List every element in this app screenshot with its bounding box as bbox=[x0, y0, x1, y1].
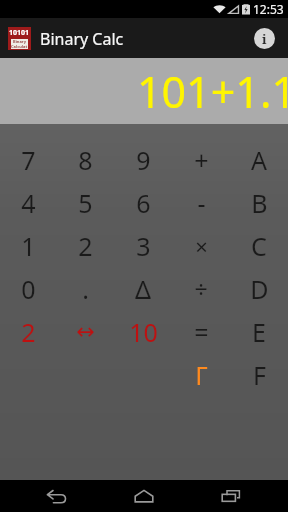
button[interactable]: 5 bbox=[57, 181, 114, 224]
staticText: × bbox=[195, 231, 208, 261]
button[interactable]: 1 bbox=[0, 224, 57, 267]
button[interactable]: 4 bbox=[0, 181, 57, 224]
staticText: Calculator bbox=[11, 44, 28, 49]
staticText: 3 bbox=[136, 229, 151, 263]
button[interactable]: . bbox=[57, 267, 114, 310]
staticText: 10101 bbox=[9, 28, 30, 38]
staticText: = bbox=[194, 315, 209, 349]
button[interactable]: 3 bbox=[114, 224, 172, 267]
button[interactable]: About bbox=[248, 22, 280, 54]
button[interactable]: = bbox=[172, 310, 230, 353]
staticText: Binary bbox=[13, 39, 26, 44]
staticText: ↔ bbox=[76, 319, 95, 345]
staticText: 0 bbox=[21, 272, 36, 306]
staticText: 10 bbox=[129, 315, 158, 349]
staticText: 1 bbox=[21, 229, 36, 263]
staticText: F bbox=[253, 358, 266, 392]
button[interactable]: F bbox=[230, 353, 288, 396]
staticText: . bbox=[82, 272, 89, 306]
staticText: Γ bbox=[195, 358, 208, 392]
button[interactable]: 0 bbox=[0, 267, 57, 310]
staticText: Binary Calc bbox=[40, 28, 124, 50]
staticText: ÷ bbox=[194, 273, 208, 304]
staticText: 2 bbox=[21, 315, 36, 349]
button[interactable]: 2 bbox=[0, 310, 57, 353]
button[interactable]: ÷ bbox=[172, 267, 230, 310]
staticText: C bbox=[251, 229, 267, 263]
staticText: Δ bbox=[135, 272, 151, 306]
button[interactable]: 101+1.1 bbox=[0, 58, 288, 124]
button[interactable]: 10 bbox=[114, 310, 172, 353]
staticText: i bbox=[262, 30, 267, 48]
button[interactable]: Δ bbox=[114, 267, 172, 310]
button[interactable]: 8 bbox=[57, 138, 114, 181]
button[interactable]: Γ bbox=[172, 353, 230, 396]
button[interactable]: × bbox=[172, 224, 230, 267]
button[interactable]: - bbox=[172, 181, 230, 224]
button[interactable]: 7 bbox=[0, 138, 57, 181]
staticText: - bbox=[197, 186, 206, 220]
button[interactable]: 2 bbox=[57, 224, 114, 267]
staticText: 5 bbox=[78, 186, 93, 220]
staticText: 101+1.1 bbox=[136, 62, 288, 121]
staticText: 9 bbox=[136, 143, 151, 177]
button[interactable]: D bbox=[230, 267, 288, 310]
staticText: A bbox=[251, 143, 267, 177]
button[interactable]: Back bbox=[27, 480, 87, 512]
button[interactable]: 9 bbox=[114, 138, 172, 181]
button[interactable]: A bbox=[230, 138, 288, 181]
button[interactable]: Home bbox=[114, 480, 174, 512]
button[interactable]: ↔ bbox=[57, 310, 114, 353]
button[interactable]: C bbox=[230, 224, 288, 267]
staticText: 12:53 bbox=[253, 1, 284, 17]
staticText: 8 bbox=[78, 143, 93, 177]
button[interactable]: E bbox=[230, 310, 288, 353]
button[interactable]: + bbox=[172, 138, 230, 181]
staticText: + bbox=[194, 143, 209, 177]
button[interactable]: B bbox=[230, 181, 288, 224]
staticText: 4 bbox=[21, 186, 36, 220]
staticText: 2 bbox=[78, 229, 93, 263]
button[interactable]: 6 bbox=[114, 181, 172, 224]
staticText: B bbox=[251, 186, 268, 220]
staticText: E bbox=[252, 315, 266, 349]
staticText: 6 bbox=[136, 186, 151, 220]
staticText: D bbox=[250, 272, 269, 306]
button[interactable]: Recent apps bbox=[201, 480, 261, 512]
staticText: 7 bbox=[21, 143, 36, 177]
